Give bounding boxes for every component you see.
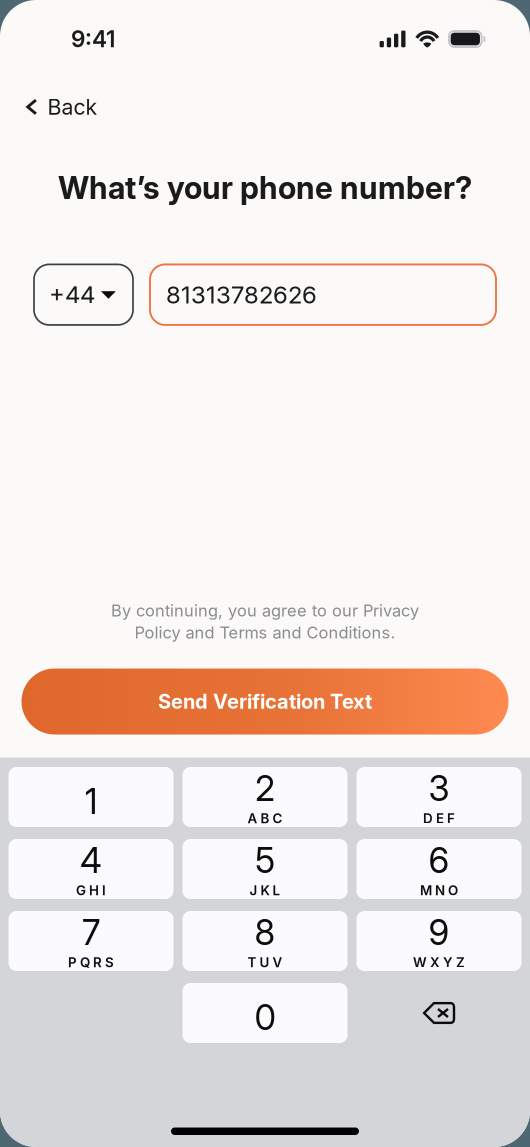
staticText: Send Verification Text xyxy=(158,689,372,714)
button[interactable]: 8 xyxy=(182,911,347,971)
staticText: W X Y Z xyxy=(413,954,465,970)
staticText: By continuing, you agree to our Privacy xyxy=(111,600,419,620)
staticText: 0 xyxy=(254,996,275,1038)
staticText: 1 xyxy=(84,780,97,822)
staticText: D E F xyxy=(423,810,455,826)
staticText: G H I xyxy=(76,882,106,898)
button[interactable]: 7 xyxy=(8,911,173,971)
staticText: J K L xyxy=(249,882,280,898)
staticText: 3 xyxy=(428,767,449,809)
staticText: 9:41 xyxy=(71,25,115,53)
button[interactable]: 4 xyxy=(8,839,173,899)
staticText: M N O xyxy=(420,882,458,898)
button[interactable]: Country code +44 xyxy=(34,264,133,325)
button[interactable]: 5 xyxy=(182,839,347,899)
button[interactable]: Delete xyxy=(356,983,521,1043)
staticText: T U V xyxy=(247,954,282,970)
staticText: P Q R S xyxy=(68,954,114,970)
button[interactable]: 1 xyxy=(8,767,173,827)
button[interactable]: 9 xyxy=(356,911,521,971)
staticText: 8 xyxy=(254,911,275,953)
staticText: Back xyxy=(48,94,98,120)
staticText: 7 xyxy=(82,911,100,953)
button[interactable]: Send Verification Text xyxy=(21,668,508,734)
button[interactable]: Phone number xyxy=(150,264,496,325)
staticText: What’s your phone number? xyxy=(58,169,472,206)
button[interactable]: Back xyxy=(0,84,114,130)
staticText: Policy and Terms and Conditions. xyxy=(134,623,395,642)
button[interactable]: 3 xyxy=(356,767,521,827)
staticText: 2 xyxy=(255,767,275,809)
staticText: 81313782626 xyxy=(166,280,317,309)
button[interactable]: 6 xyxy=(356,839,521,899)
staticText: 5 xyxy=(255,839,275,881)
button[interactable]: 2 xyxy=(182,767,347,827)
staticText: 4 xyxy=(80,839,102,881)
staticText: 6 xyxy=(428,839,449,881)
staticText: 9 xyxy=(428,911,449,953)
staticText: A B C xyxy=(247,810,282,826)
button[interactable]: 0 xyxy=(182,983,347,1043)
staticText: +44 xyxy=(49,280,95,309)
